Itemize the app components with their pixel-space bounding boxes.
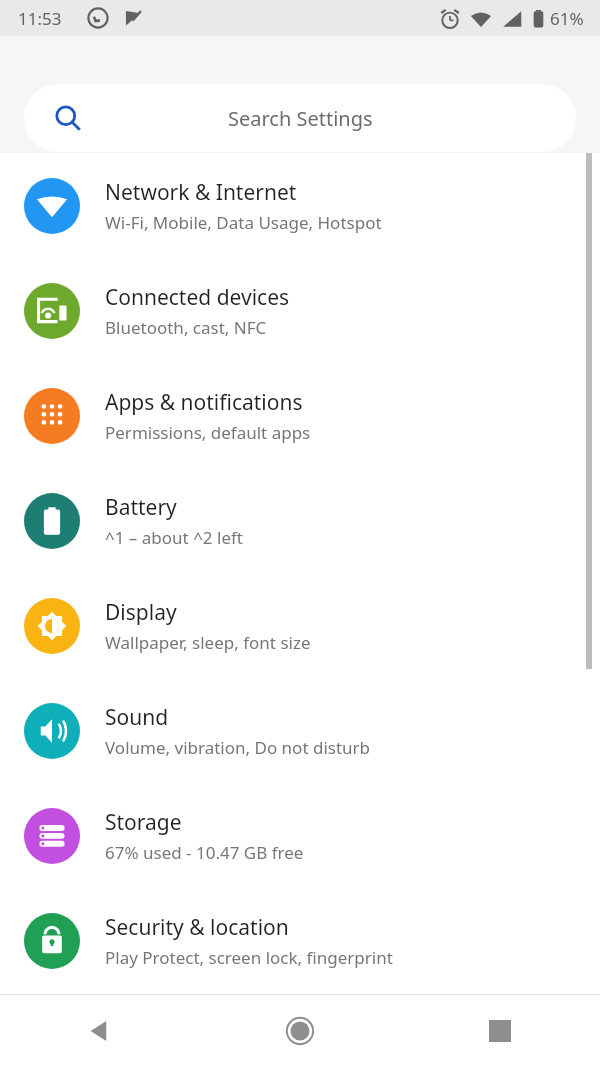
staticText: Connected devices	[105, 283, 290, 312]
other: Search	[54, 104, 82, 132]
staticText: Storage	[105, 808, 182, 837]
staticText: Volume, vibration, Do not disturb	[105, 736, 371, 759]
staticText: 61%	[550, 7, 584, 30]
button[interactable]: Network & Internet	[0, 153, 600, 258]
button[interactable]: Recent apps	[400, 994, 600, 1067]
staticText: Play Protect, screen lock, fingerprint	[105, 946, 393, 969]
staticText: Permissions, default apps	[105, 421, 311, 444]
staticText: Wi-Fi, Mobile, Data Usage, Hotspot	[105, 211, 382, 234]
staticText: ^1 – about ^2 left	[105, 526, 243, 549]
staticText: Wallpaper, sleep, font size	[105, 631, 311, 654]
staticText: Display	[105, 598, 177, 627]
button[interactable]: Storage	[0, 783, 600, 888]
button[interactable]: Sound	[0, 678, 600, 783]
button[interactable]: Battery	[0, 468, 600, 573]
staticText: Battery	[105, 493, 177, 522]
staticText: Search Settings	[228, 105, 373, 132]
staticText: 67% used - 10.47 GB free	[105, 841, 304, 864]
staticText: Sound	[105, 703, 169, 732]
button[interactable]: Security & location	[0, 888, 600, 993]
staticText: Bluetooth, cast, NFC	[105, 316, 267, 339]
button[interactable]: Back	[0, 994, 200, 1067]
staticText: Network & Internet	[105, 178, 297, 207]
staticText: Apps & notifications	[105, 388, 303, 417]
button[interactable]: Home	[200, 994, 400, 1067]
button[interactable]: Search	[24, 84, 576, 152]
staticText: Security & location	[105, 913, 289, 942]
staticText: 11:53	[18, 7, 62, 30]
button[interactable]: Display	[0, 573, 600, 678]
button[interactable]: Connected devices	[0, 258, 600, 363]
button[interactable]: Apps & notifications	[0, 363, 600, 468]
